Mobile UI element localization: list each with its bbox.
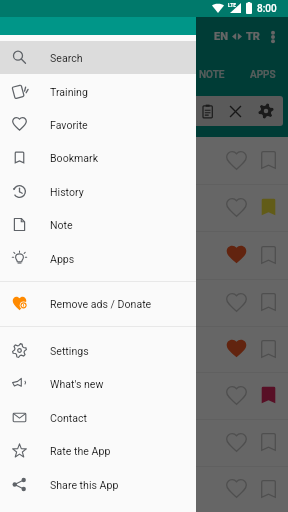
button[interactable]: NOTE	[186, 64, 238, 86]
button[interactable]: Clear	[223, 99, 247, 123]
button[interactable]: More options	[260, 24, 285, 49]
button[interactable]: Share this App	[0, 468, 196, 501]
staticText: Training	[50, 86, 88, 98]
button[interactable]	[0, 372, 288, 419]
button[interactable]: Rate the App	[0, 434, 196, 467]
button[interactable]: Contact	[0, 401, 196, 434]
staticText: History	[50, 186, 84, 198]
button[interactable]: Apps	[0, 242, 196, 275]
staticText: What's new	[50, 378, 104, 390]
staticText: APPS	[250, 69, 276, 81]
staticText: EN	[214, 30, 228, 43]
button[interactable]: What's new	[0, 367, 196, 400]
button[interactable]: Remove ads / Donate	[0, 287, 196, 320]
staticText: Favorite	[50, 119, 88, 131]
button[interactable]: History	[0, 175, 196, 208]
staticText: Bookmark	[50, 152, 99, 164]
staticText: Contact	[50, 412, 88, 424]
button[interactable]	[0, 419, 288, 466]
button[interactable]: Favorite	[0, 108, 196, 141]
button[interactable]: Settings	[254, 99, 278, 123]
button[interactable]	[0, 184, 288, 231]
button[interactable]	[0, 279, 288, 326]
button[interactable]	[0, 326, 288, 373]
staticText: Share this App	[50, 479, 119, 491]
button[interactable]: Training	[0, 75, 196, 108]
staticText: Settings	[50, 345, 89, 357]
staticText: NOTE	[199, 69, 225, 81]
staticText: 8:00	[257, 3, 277, 15]
staticText: Note	[50, 219, 73, 231]
button[interactable]	[0, 466, 288, 512]
button[interactable]: EN	[214, 29, 260, 44]
button[interactable]	[0, 231, 288, 279]
button[interactable]: Note	[0, 208, 196, 241]
staticText: Search	[50, 52, 83, 64]
staticText: Rate the App	[50, 445, 111, 457]
staticText: Apps	[50, 253, 75, 265]
button[interactable]: APPS	[237, 64, 288, 86]
button[interactable]: Bookmark	[0, 141, 196, 174]
button[interactable]	[0, 137, 288, 183]
button[interactable]: Paste	[195, 99, 219, 123]
staticText: Remove ads / Donate	[50, 298, 152, 310]
staticText: TR	[246, 30, 260, 43]
button[interactable]: Settings	[0, 334, 196, 367]
staticText: LTE	[228, 2, 237, 8]
button[interactable]: Search	[0, 41, 196, 74]
